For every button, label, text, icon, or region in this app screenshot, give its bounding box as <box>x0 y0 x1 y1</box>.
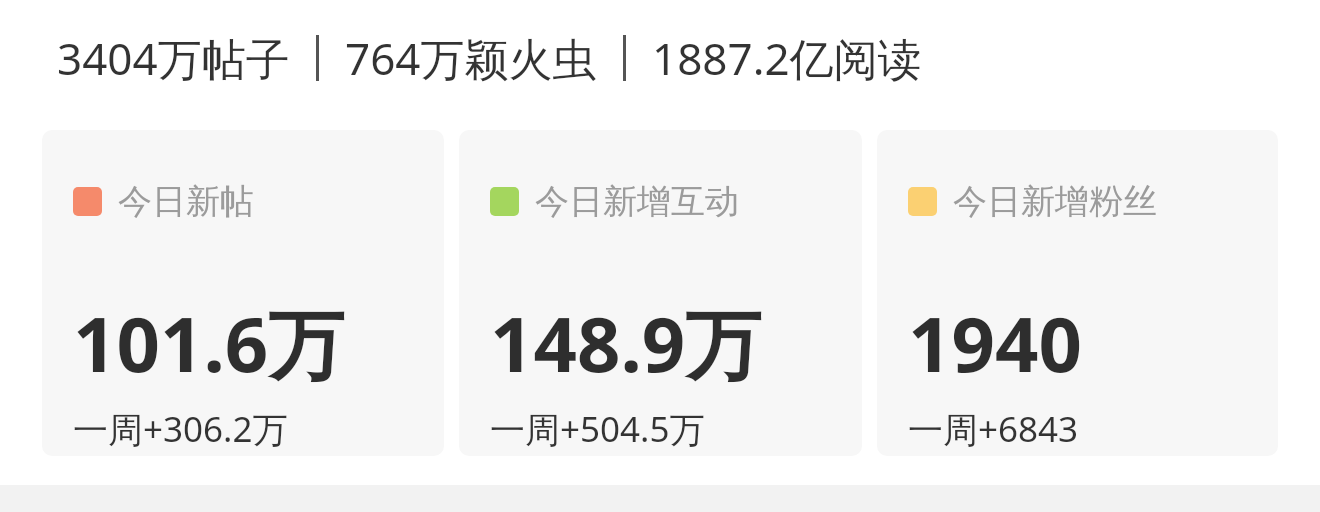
other: 今日新帖 <box>73 187 102 216</box>
button[interactable]: 今日新增互动 <box>459 130 862 456</box>
staticText: 764万颖火虫 <box>345 28 597 88</box>
other: 今日新增互动 <box>490 187 519 216</box>
staticText: 148.9万 <box>490 291 762 395</box>
staticText: 一周+306.2万 <box>73 405 288 453</box>
button[interactable]: 今日新帖 <box>42 130 444 456</box>
staticText: 1887.2亿阅读 <box>652 28 922 88</box>
button[interactable]: 3404万帖子 <box>57 28 922 88</box>
other: 今日新增粉丝 <box>908 187 937 216</box>
staticText: 101.6万 <box>73 291 345 395</box>
staticText: 1940 <box>908 291 1082 395</box>
staticText: 一周+6843 <box>908 405 1079 453</box>
staticText: 今日新增粉丝 <box>953 180 1157 223</box>
button[interactable]: 今日新增粉丝 <box>877 130 1278 456</box>
staticText: 3404万帖子 <box>57 28 290 88</box>
staticText: 今日新帖 <box>118 180 254 223</box>
staticText: 一周+504.5万 <box>490 405 705 453</box>
staticText: 今日新增互动 <box>535 180 739 223</box>
